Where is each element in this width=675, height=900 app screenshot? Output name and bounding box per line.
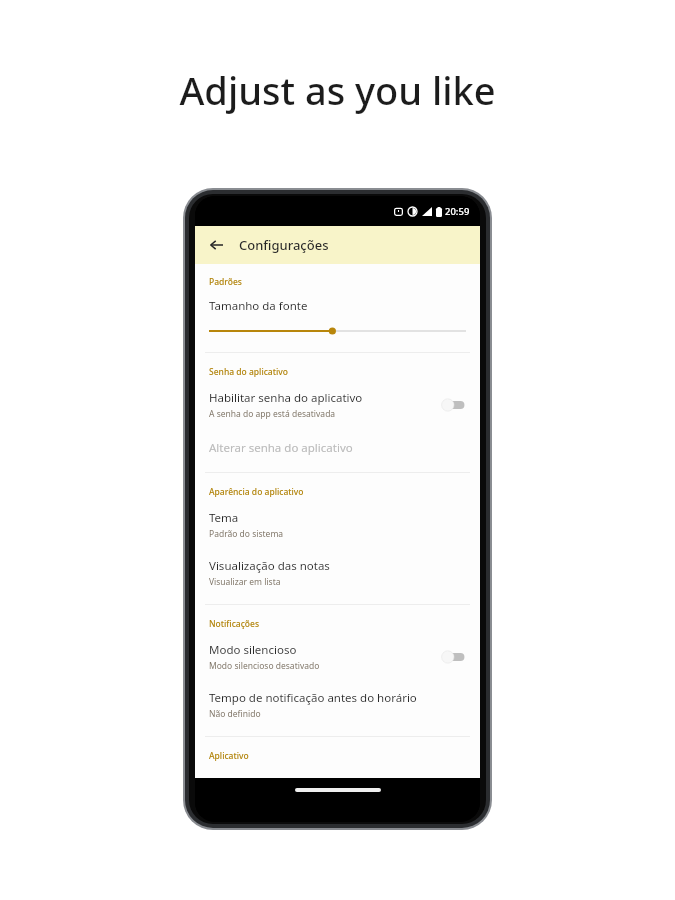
staticText: Padrão do sistema [209,528,284,540]
button[interactable]: Tema [195,510,480,540]
staticText: Modo silencioso [209,642,297,658]
button[interactable]: Tamanho da fonte [195,298,480,336]
staticText: Senha do aplicativo [209,366,288,378]
staticText: Visualização das notas [209,558,330,574]
staticText: Adjust as you like [0,64,675,116]
staticText: Aparência do aplicativo [209,486,304,498]
staticText: Aplicativo [209,750,249,762]
button[interactable]: Toggle [440,397,466,413]
staticText: Notificações [209,618,260,630]
button[interactable]: Visualização das notas [195,558,480,588]
button[interactable]: Tempo de notificação antes do horário [195,690,480,720]
button[interactable]: Modo silencioso [195,642,480,672]
staticText: Configurações [239,236,329,254]
staticText: A senha do app está desativada [209,408,336,420]
staticText: Padrões [209,276,242,288]
staticText: Não definido [209,708,261,720]
staticText: Tema [209,510,239,526]
staticText: Tamanho da fonte [209,298,308,314]
staticText: Alterar senha do aplicativo [209,440,353,456]
button[interactable]: Habilitar senha do aplicativo [195,390,480,420]
button[interactable]: Toggle [440,649,466,665]
button[interactable]: Back [203,232,229,258]
staticText: Tempo de notificação antes do horário [209,690,417,706]
button[interactable]: Alterar senha do aplicativo [195,440,480,456]
staticText: Modo silencioso desativado [209,660,320,672]
staticText: Habilitar senha do aplicativo [209,390,363,406]
staticText: 20:59 [445,205,470,218]
staticText: Visualizar em lista [209,576,281,588]
